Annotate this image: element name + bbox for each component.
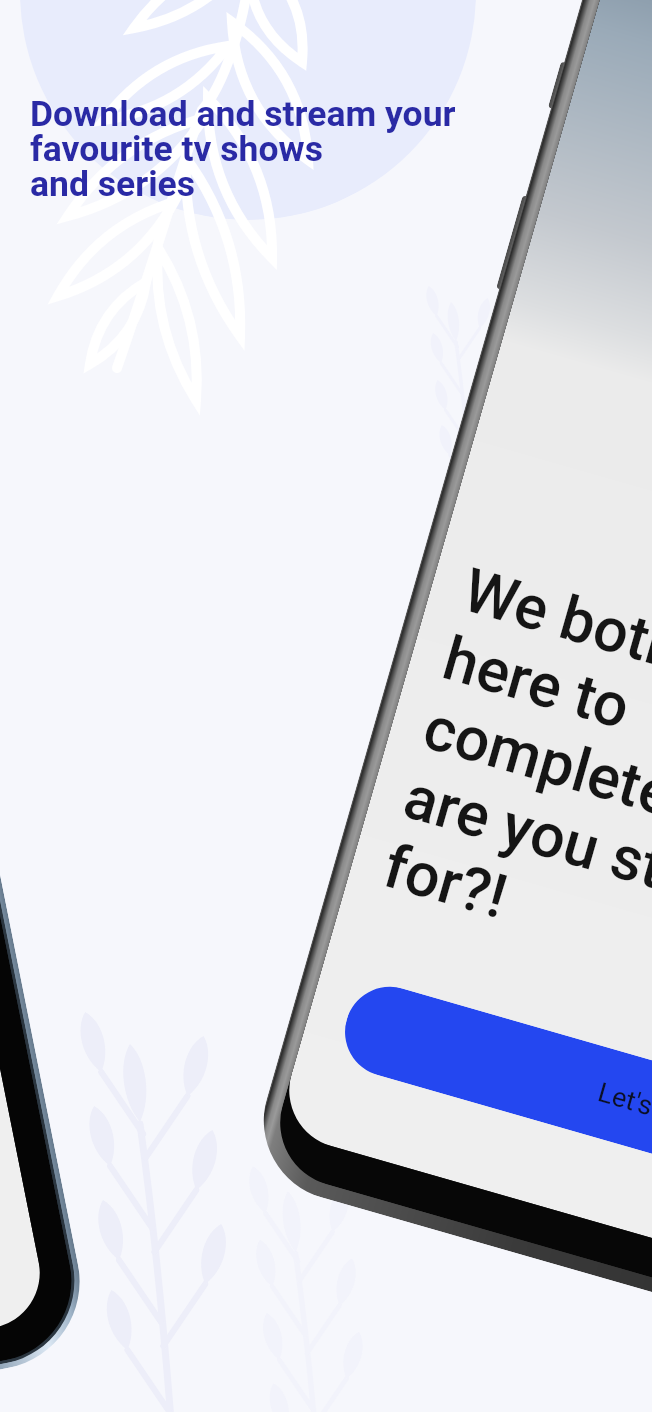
staticText: We both here to complete are you still f… <box>376 554 652 984</box>
staticText: Download and stream your favourite tv sh… <box>30 93 456 205</box>
staticText: Let's go <box>594 1076 652 1133</box>
button[interactable]: Let's go <box>334 976 652 1215</box>
